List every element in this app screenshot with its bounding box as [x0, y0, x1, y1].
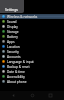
staticText: Wireless & networks [7, 15, 38, 19]
staticText: Apps [7, 40, 15, 44]
button[interactable]: Location [0, 44, 64, 49]
staticText: Language & input [7, 60, 34, 64]
button[interactable]: Battery [0, 34, 64, 39]
staticText: Sound [7, 20, 17, 24]
button[interactable]: Display [0, 24, 64, 29]
button[interactable]: Back [9, 91, 18, 100]
staticText: Storage [7, 30, 19, 34]
staticText: Accessibility [7, 75, 25, 79]
button[interactable]: Accounts [0, 54, 64, 59]
button[interactable]: About phone [0, 79, 64, 84]
button[interactable]: Backup & reset [0, 64, 64, 69]
button[interactable]: Apps [0, 39, 64, 44]
button[interactable]: Wireless & networks [0, 14, 64, 19]
staticText: Security [7, 50, 19, 54]
button[interactable]: Home [28, 91, 37, 100]
button[interactable]: Storage [0, 29, 64, 34]
button[interactable]: Date & time [0, 69, 64, 74]
button[interactable]: Language & input [0, 59, 64, 64]
staticText: About phone [7, 80, 27, 84]
staticText: Settings [5, 7, 18, 12]
button[interactable]: Accessibility [0, 74, 64, 79]
button[interactable]: Security [0, 49, 64, 54]
button[interactable]: Sound [0, 19, 64, 24]
button[interactable]: Recents [46, 91, 55, 100]
staticText: Battery [7, 35, 18, 39]
staticText: Backup & reset [7, 65, 30, 69]
staticText: Date & time [7, 70, 25, 74]
staticText: Location [7, 45, 20, 49]
staticText: Accounts [7, 55, 21, 59]
staticText: Display [7, 25, 18, 29]
